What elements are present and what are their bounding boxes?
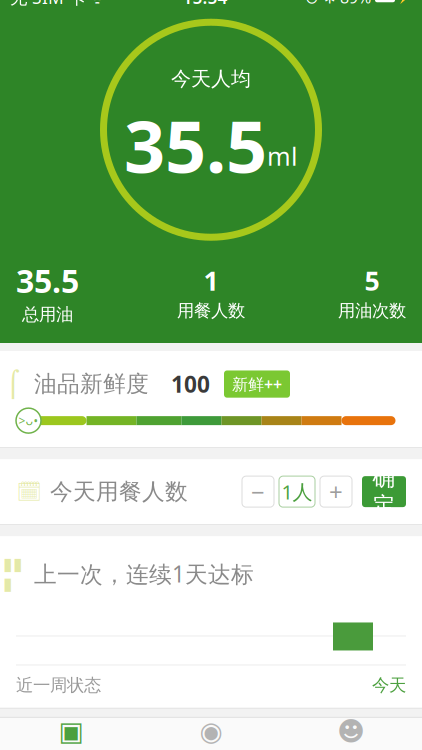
- staticText: 1: [203, 263, 218, 298]
- staticText: 1人: [281, 478, 312, 505]
- staticText: ▣: [58, 716, 83, 746]
- staticText: 用油次数: [338, 300, 406, 321]
- staticText: 今天人均: [171, 67, 251, 91]
- staticText: ⌠: [6, 370, 19, 398]
- staticText: ☻: [337, 716, 365, 746]
- staticText: 35.5: [124, 97, 267, 193]
- staticText: 今天: [372, 674, 406, 696]
- staticText: 15:54: [182, 0, 227, 9]
- staticText: 无 SIM 卡: [10, 0, 86, 9]
- staticText: 油品新鲜度: [34, 370, 149, 398]
- button[interactable]: 确定: [362, 476, 406, 507]
- staticText: ⊙ ∗ 89%: [305, 0, 371, 8]
- staticText: −: [251, 476, 265, 508]
- staticText: ml: [267, 139, 298, 173]
- staticText: 总用油: [22, 304, 73, 325]
- staticText: 新鲜++: [232, 373, 282, 395]
- staticText: 35.5: [16, 259, 79, 302]
- button[interactable]: ▣: [1, 718, 141, 750]
- staticText: 用餐人数: [177, 300, 245, 321]
- staticText: ▮▮▮: [3, 554, 23, 593]
- staticText: 🗓: [16, 480, 41, 503]
- button[interactable]: ☻: [281, 718, 421, 750]
- staticText: 100: [171, 369, 210, 399]
- staticText: >ᴗ•: [18, 413, 38, 429]
- staticText: ⚡: [397, 0, 412, 4]
- staticText: 5: [364, 263, 379, 298]
- staticText: 确定: [372, 464, 395, 519]
- staticText: ◉: [199, 716, 222, 746]
- staticText: 上一次，连续1天达标: [34, 559, 254, 589]
- button[interactable]: ◉: [141, 718, 281, 750]
- staticText: ᯤ: [86, 0, 105, 8]
- button[interactable]: 新鲜++: [224, 370, 290, 398]
- staticText: 今天用餐人数: [50, 478, 188, 505]
- button[interactable]: 减少人数: [242, 476, 274, 507]
- button[interactable]: 增加人数: [320, 476, 352, 507]
- staticText: +: [329, 476, 343, 508]
- staticText: 近一周状态: [16, 674, 101, 696]
